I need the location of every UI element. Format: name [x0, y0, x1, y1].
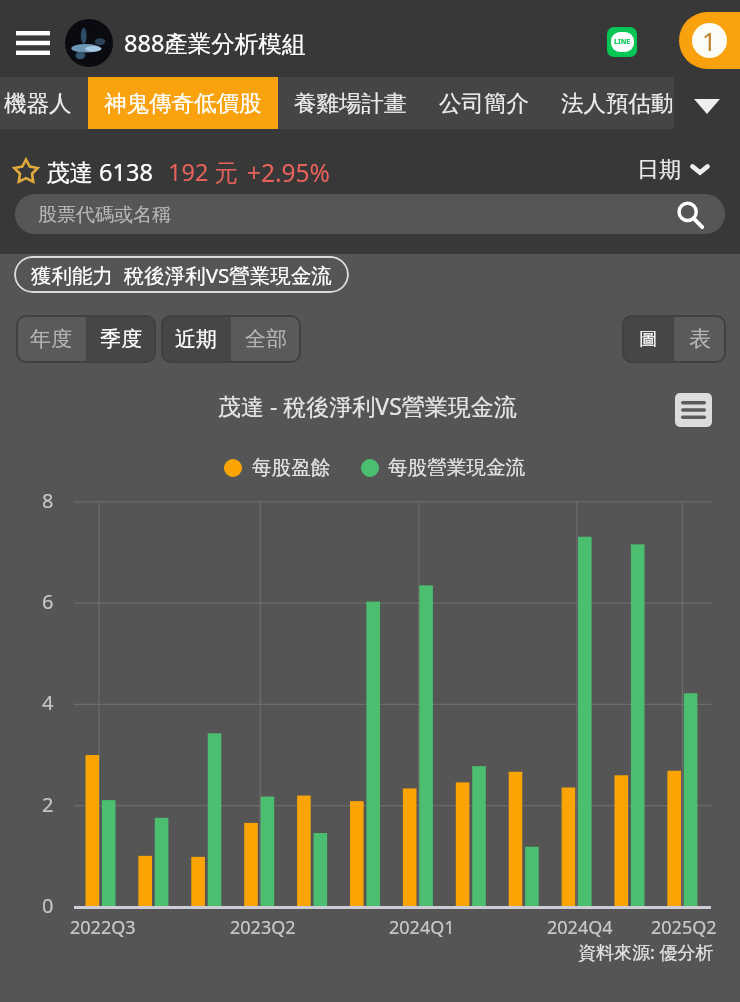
staticText: 1	[702, 24, 717, 58]
button[interactable]: 獲利能力 稅後淨利VS營業現金流	[14, 256, 349, 293]
button[interactable]: 年度	[16, 315, 86, 363]
button[interactable]: 表	[674, 315, 726, 363]
staticText: 4	[42, 689, 54, 716]
button[interactable]: 全部	[231, 315, 301, 363]
staticText: 資料來源: 優分析	[578, 940, 714, 965]
button[interactable]: 股票代碼或名稱	[15, 194, 725, 234]
button[interactable]: Chart view	[622, 315, 674, 363]
staticText: 888產業分析模組	[124, 27, 306, 59]
button[interactable]: Profile	[65, 19, 113, 67]
staticText: 公司簡介	[439, 89, 529, 117]
staticText: 每股盈餘	[252, 455, 331, 480]
button[interactable]: Account	[679, 12, 740, 69]
button[interactable]: 近期	[161, 315, 231, 363]
staticText: 近期	[175, 326, 217, 352]
staticText: 養雞場計畫	[294, 89, 407, 117]
button[interactable]: LINE	[607, 27, 637, 57]
staticText: +2.95%	[247, 156, 330, 189]
staticText: 圖	[639, 328, 657, 351]
staticText: 6	[42, 588, 54, 615]
button[interactable]: Menu	[8, 18, 58, 68]
staticText: 季度	[100, 326, 142, 352]
staticText: 神鬼傳奇低價股	[104, 89, 262, 117]
button[interactable]: Chart menu	[675, 393, 712, 427]
staticText: 年度	[30, 326, 72, 352]
button[interactable]: 機器人	[0, 77, 88, 129]
staticText: 股票代碼或名稱	[38, 203, 171, 227]
staticText: 192 元	[168, 156, 238, 188]
staticText: 2024Q1	[389, 915, 455, 940]
staticText: 0	[42, 892, 54, 919]
button[interactable]: 法人預估動	[545, 77, 690, 129]
staticText: 全部	[245, 326, 287, 352]
button[interactable]: 養雞場計畫	[278, 77, 423, 129]
button[interactable]: 日期	[632, 151, 715, 189]
staticText: 機器人	[4, 89, 72, 117]
staticText: 茂達 6138	[46, 156, 153, 188]
staticText: 獲利能力 稅後淨利VS營業現金流	[31, 261, 332, 289]
staticText: LINE	[614, 37, 631, 47]
staticText: 2023Q2	[230, 915, 296, 940]
staticText: 2024Q4	[547, 915, 613, 940]
staticText: 8	[42, 487, 54, 514]
staticText: 2022Q3	[70, 915, 136, 940]
staticText: 日期	[637, 156, 681, 184]
button[interactable]: 公司簡介	[423, 77, 545, 129]
button[interactable]: More tabs	[674, 77, 740, 129]
staticText: 法人預估動	[561, 89, 674, 117]
button[interactable]: 神鬼傳奇低價股	[88, 77, 278, 129]
staticText: 2	[42, 791, 54, 818]
staticText: 每股營業現金流	[388, 455, 526, 480]
button[interactable]: 季度	[86, 315, 156, 363]
staticText: 2025Q2	[651, 915, 717, 940]
staticText: 茂達 - 稅後淨利VS營業現金流	[218, 390, 517, 421]
staticText: 表	[689, 325, 711, 353]
